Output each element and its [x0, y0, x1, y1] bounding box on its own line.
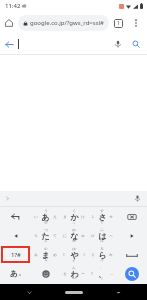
staticText: ほ	[100, 239, 104, 243]
staticText: う	[44, 209, 48, 213]
staticText: り	[91, 253, 95, 257]
staticText: め	[53, 253, 57, 257]
staticText: ね	[81, 234, 85, 238]
button[interactable]: Voice input	[130, 191, 145, 206]
staticText: つ	[44, 228, 48, 232]
button[interactable]: う	[31, 207, 60, 226]
staticText: 〜	[81, 272, 85, 276]
button[interactable]: Home	[63, 287, 85, 297]
button[interactable]: ん	[60, 264, 88, 283]
staticText: …	[110, 271, 113, 276]
button[interactable]: ゆ	[60, 245, 88, 264]
staticText: し	[91, 215, 95, 219]
staticText: ゆ	[72, 247, 76, 251]
staticText: ぬ	[72, 228, 76, 232]
staticText: ま	[41, 250, 50, 260]
staticText: 、	[98, 269, 106, 279]
staticText: た	[41, 231, 50, 241]
button[interactable]: More options	[127, 14, 145, 32]
button[interactable]: Search	[127, 35, 145, 53]
button[interactable]: Cursor left	[1, 227, 30, 244]
staticText: ん	[72, 266, 76, 270]
button[interactable]: google.co.jp/?gws_rd=ssl#	[18, 15, 109, 31]
staticText: google.co.jp/?gws_rd=ssl#	[30, 19, 104, 27]
staticText: や	[70, 250, 79, 260]
staticText: い	[34, 215, 38, 219]
button[interactable]: ふ	[88, 226, 116, 245]
staticText: は	[98, 231, 107, 241]
button[interactable]: Cursor right	[116, 226, 147, 245]
button[interactable]: Input mode	[1, 265, 30, 282]
staticText: か	[70, 212, 79, 222]
staticText: ひ	[91, 234, 95, 238]
staticText: 1?#	[11, 251, 21, 259]
staticText: こ	[72, 220, 76, 224]
button[interactable]: る	[88, 245, 116, 264]
staticText: ら	[98, 250, 107, 260]
staticText: す	[100, 209, 104, 213]
staticText: ろ	[100, 258, 104, 262]
staticText: ！	[100, 277, 104, 281]
button[interactable]: Back	[0, 35, 18, 53]
button[interactable]: Space	[116, 245, 147, 264]
staticText: ふ	[100, 228, 104, 232]
staticText: み	[34, 253, 38, 257]
button[interactable]: Tabs	[109, 14, 127, 32]
staticText: れ	[109, 253, 113, 257]
button[interactable]: ぬ	[60, 226, 88, 245]
button[interactable]: Home	[0, 14, 18, 32]
button[interactable]: Emoji	[31, 264, 60, 283]
button[interactable]: つ	[31, 226, 60, 245]
button[interactable]: Undo	[1, 208, 30, 225]
staticText: 1	[117, 20, 120, 27]
staticText: ?	[91, 271, 93, 276]
button[interactable]: Search	[116, 264, 147, 283]
staticText: て	[53, 234, 57, 238]
staticText: よ	[72, 258, 76, 262]
staticText: け	[81, 215, 85, 219]
staticText: く	[72, 209, 76, 213]
button[interactable]: く	[60, 207, 88, 226]
staticText: の	[72, 239, 76, 243]
staticText: (	[63, 252, 65, 257]
staticText: を	[63, 272, 67, 276]
staticText: ち	[34, 234, 38, 238]
staticText: と	[44, 239, 48, 243]
staticText: へ	[109, 234, 113, 238]
staticText: え	[53, 215, 57, 219]
staticText: )	[83, 252, 85, 257]
staticText: る	[100, 247, 104, 251]
staticText: む	[44, 247, 48, 251]
staticText: 11:42	[5, 2, 21, 10]
staticText: さ	[98, 212, 107, 222]
button[interactable]: Expand suggestions	[0, 191, 15, 206]
staticText: も	[44, 258, 48, 262]
button[interactable]	[18, 34, 109, 54]
staticText: あ	[10, 269, 18, 278]
staticText: あ	[41, 212, 50, 222]
staticText: せ	[109, 215, 113, 219]
button[interactable]: す	[88, 207, 116, 226]
staticText: そ	[100, 220, 104, 224]
button[interactable]: む	[31, 245, 60, 264]
button[interactable]: Back	[24, 287, 34, 297]
staticText: に	[63, 234, 67, 238]
staticText: き	[63, 215, 67, 219]
staticText: ー	[72, 277, 76, 281]
staticText: 。	[100, 266, 104, 270]
button[interactable]: Recent apps	[113, 287, 123, 297]
staticText: わ	[70, 269, 79, 279]
staticText: な	[70, 231, 79, 241]
button[interactable]: 。	[88, 264, 116, 283]
staticText: a	[19, 272, 22, 277]
staticText: お	[44, 220, 48, 224]
button[interactable]: Delete	[116, 207, 147, 226]
button[interactable]: Voice search	[109, 35, 127, 53]
button[interactable]: Symbols	[1, 246, 30, 263]
